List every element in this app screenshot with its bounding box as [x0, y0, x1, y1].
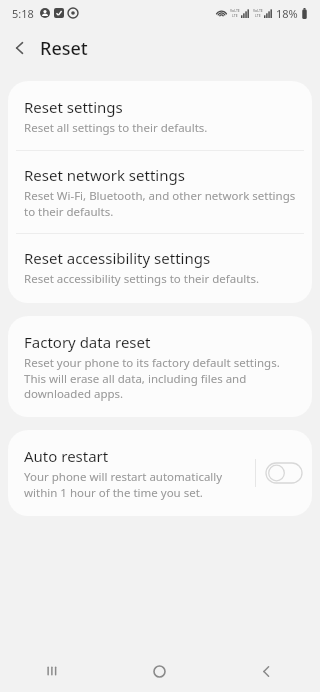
staticText: Reset network settings	[24, 165, 185, 185]
staticText: VoLTE	[230, 8, 240, 13]
staticText: Reset	[40, 36, 88, 61]
staticText: 5:18	[12, 6, 34, 21]
button[interactable]: Recent apps	[0, 650, 106, 692]
staticText: Your phone will restart automatically wi…	[24, 469, 247, 500]
button[interactable]: Auto restart toggle	[256, 447, 312, 499]
staticText: 18%	[276, 6, 298, 21]
staticText: LTE	[255, 13, 261, 18]
button[interactable]: Home	[106, 650, 213, 692]
staticText: Reset accessibility settings to their de…	[24, 271, 259, 287]
button[interactable]: Factory data reset	[8, 316, 312, 417]
staticText: VoLTE	[253, 8, 263, 13]
staticText: LTE	[232, 13, 238, 18]
staticText: Factory data reset	[24, 332, 151, 352]
button[interactable]: Reset accessibility settings	[8, 234, 312, 303]
staticText: Reset Wi-Fi, Bluetooth, and other networ…	[24, 188, 296, 219]
button[interactable]: Reset settings	[8, 81, 312, 150]
staticText: Reset settings	[24, 97, 123, 117]
staticText: Auto restart	[24, 446, 109, 466]
button[interactable]: Back	[0, 28, 40, 68]
staticText: Reset your phone to its factory default …	[24, 355, 296, 401]
button[interactable]: Auto restart	[8, 430, 255, 516]
button[interactable]: Back	[213, 650, 320, 692]
staticText: Reset accessibility settings	[24, 248, 211, 268]
staticText: Reset all settings to their defaults.	[24, 120, 208, 136]
button[interactable]: Reset network settings	[8, 151, 312, 233]
